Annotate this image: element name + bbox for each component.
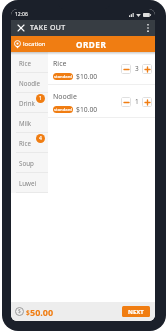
staticText: location	[23, 40, 46, 48]
staticText: 3	[135, 64, 139, 73]
button[interactable]: Drink	[11, 93, 48, 113]
staticText: Milk	[19, 119, 32, 127]
staticText: 12:06	[15, 11, 28, 18]
button[interactable]: ORDER	[51, 36, 155, 52]
button[interactable]: location	[11, 36, 51, 52]
button[interactable]: Decrease quantity	[121, 97, 131, 107]
staticText: Noodle	[19, 79, 41, 87]
staticText: Rice	[53, 59, 67, 69]
staticText: 4	[39, 135, 42, 142]
button[interactable]: Close	[11, 20, 30, 36]
staticText: Rice	[19, 139, 31, 147]
staticText: TAKE OUT	[30, 23, 66, 33]
staticText: NEXT	[128, 308, 144, 316]
staticText: $	[26, 308, 30, 317]
button[interactable]: Milk	[11, 113, 48, 133]
button[interactable]: Soup	[11, 153, 48, 173]
button[interactable]: Noodle	[11, 73, 48, 93]
staticText: ORDER	[76, 39, 107, 50]
staticText: Noodle	[53, 92, 77, 102]
staticText: $10.00	[76, 105, 98, 114]
button[interactable]: Rice	[11, 53, 48, 73]
staticText: Luwei	[19, 179, 37, 187]
staticText: 50.00	[30, 306, 54, 318]
staticText: Drink	[19, 99, 35, 107]
button[interactable]: Decrease quantity	[121, 64, 131, 74]
button[interactable]: Rice	[48, 52, 155, 85]
button[interactable]: Increase quantity	[142, 64, 152, 74]
staticText: Soup	[19, 159, 34, 167]
button[interactable]: Rice	[11, 133, 48, 153]
staticText: standard	[54, 74, 72, 80]
button[interactable]: Luwei	[11, 173, 48, 193]
staticText: 1	[135, 97, 139, 106]
staticText: 1	[39, 95, 42, 102]
staticText: Rice	[19, 59, 31, 67]
button[interactable]: NEXT	[122, 306, 150, 317]
button[interactable]: Increase quantity	[142, 97, 152, 107]
staticText: standard	[54, 107, 72, 113]
staticText: $	[18, 308, 21, 315]
staticText: $10.00	[76, 72, 98, 81]
button[interactable]: More options	[141, 20, 155, 36]
button[interactable]: Noodle	[48, 85, 155, 118]
